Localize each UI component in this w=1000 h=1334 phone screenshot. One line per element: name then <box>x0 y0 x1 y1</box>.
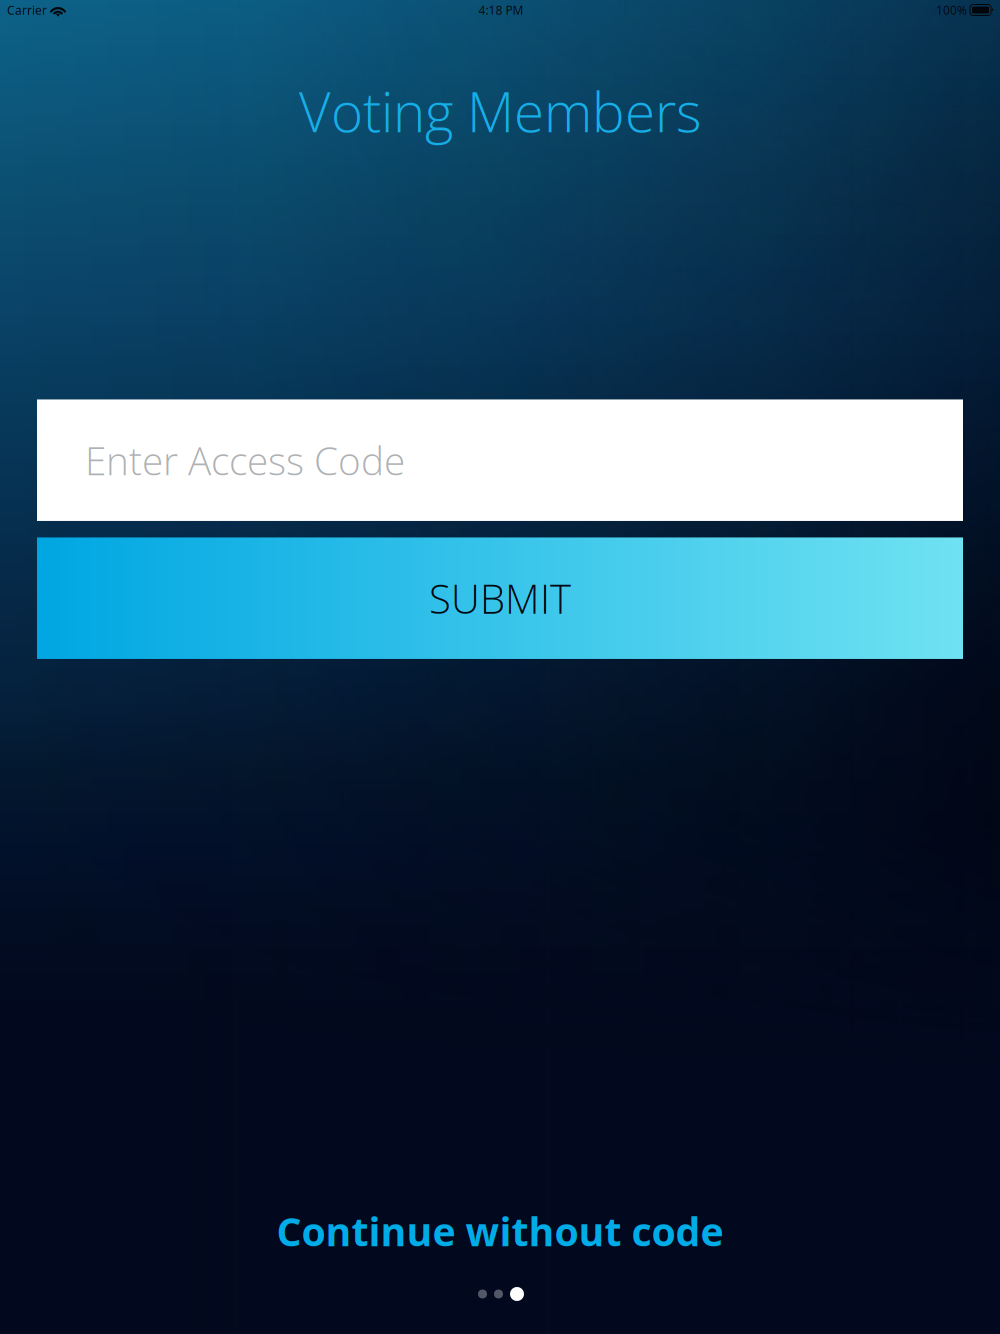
staticText: Enter Access Code <box>85 434 405 487</box>
staticText: Continue without code <box>276 1204 723 1258</box>
button[interactable]: Enter Access Code <box>37 399 963 521</box>
button[interactable]: SUBMIT <box>37 537 963 659</box>
staticText: 4:18 PM <box>478 2 523 18</box>
staticText: SUBMIT <box>429 571 571 625</box>
staticText: 100% <box>936 2 967 18</box>
staticText: Voting Members <box>299 74 701 148</box>
button[interactable]: Page 3 of 3 <box>478 1287 524 1301</box>
button[interactable]: Continue without code <box>200 1201 800 1261</box>
staticText: Carrier <box>7 2 47 18</box>
